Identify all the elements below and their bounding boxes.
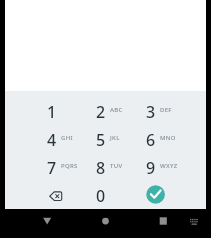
button[interactable] [5, 153, 72, 181]
staticText: 5 [96, 129, 106, 151]
button[interactable] [72, 181, 139, 209]
button[interactable] [139, 181, 206, 209]
button[interactable] [72, 97, 139, 125]
button[interactable] [186, 214, 202, 228]
staticText: JKL [110, 134, 120, 142]
staticText: 8 [96, 157, 106, 179]
staticText: GHI [61, 134, 73, 142]
button[interactable] [95, 212, 117, 230]
button[interactable] [153, 212, 175, 230]
staticText: 0 [96, 185, 106, 207]
staticText: 4 [47, 129, 57, 151]
staticText: MNO [160, 134, 176, 142]
button[interactable] [139, 153, 206, 181]
button[interactable] [139, 125, 206, 153]
staticText: ABC [110, 106, 123, 114]
staticText: 7 [47, 157, 57, 179]
staticText: 9 [146, 157, 156, 179]
staticText: TUV [110, 162, 123, 170]
button[interactable] [36, 212, 58, 230]
button[interactable] [5, 181, 72, 209]
staticText: 3 [146, 101, 156, 123]
button[interactable] [72, 153, 139, 181]
button[interactable] [139, 97, 206, 125]
staticText: 1 [47, 101, 57, 123]
staticText: 6 [146, 129, 156, 151]
staticText: DEF [160, 106, 172, 114]
button[interactable] [72, 125, 139, 153]
button[interactable] [5, 97, 72, 125]
staticText: PQRS [61, 162, 78, 170]
staticText: WXYZ [160, 162, 178, 170]
button[interactable] [5, 125, 72, 153]
staticText: 2 [96, 101, 106, 123]
